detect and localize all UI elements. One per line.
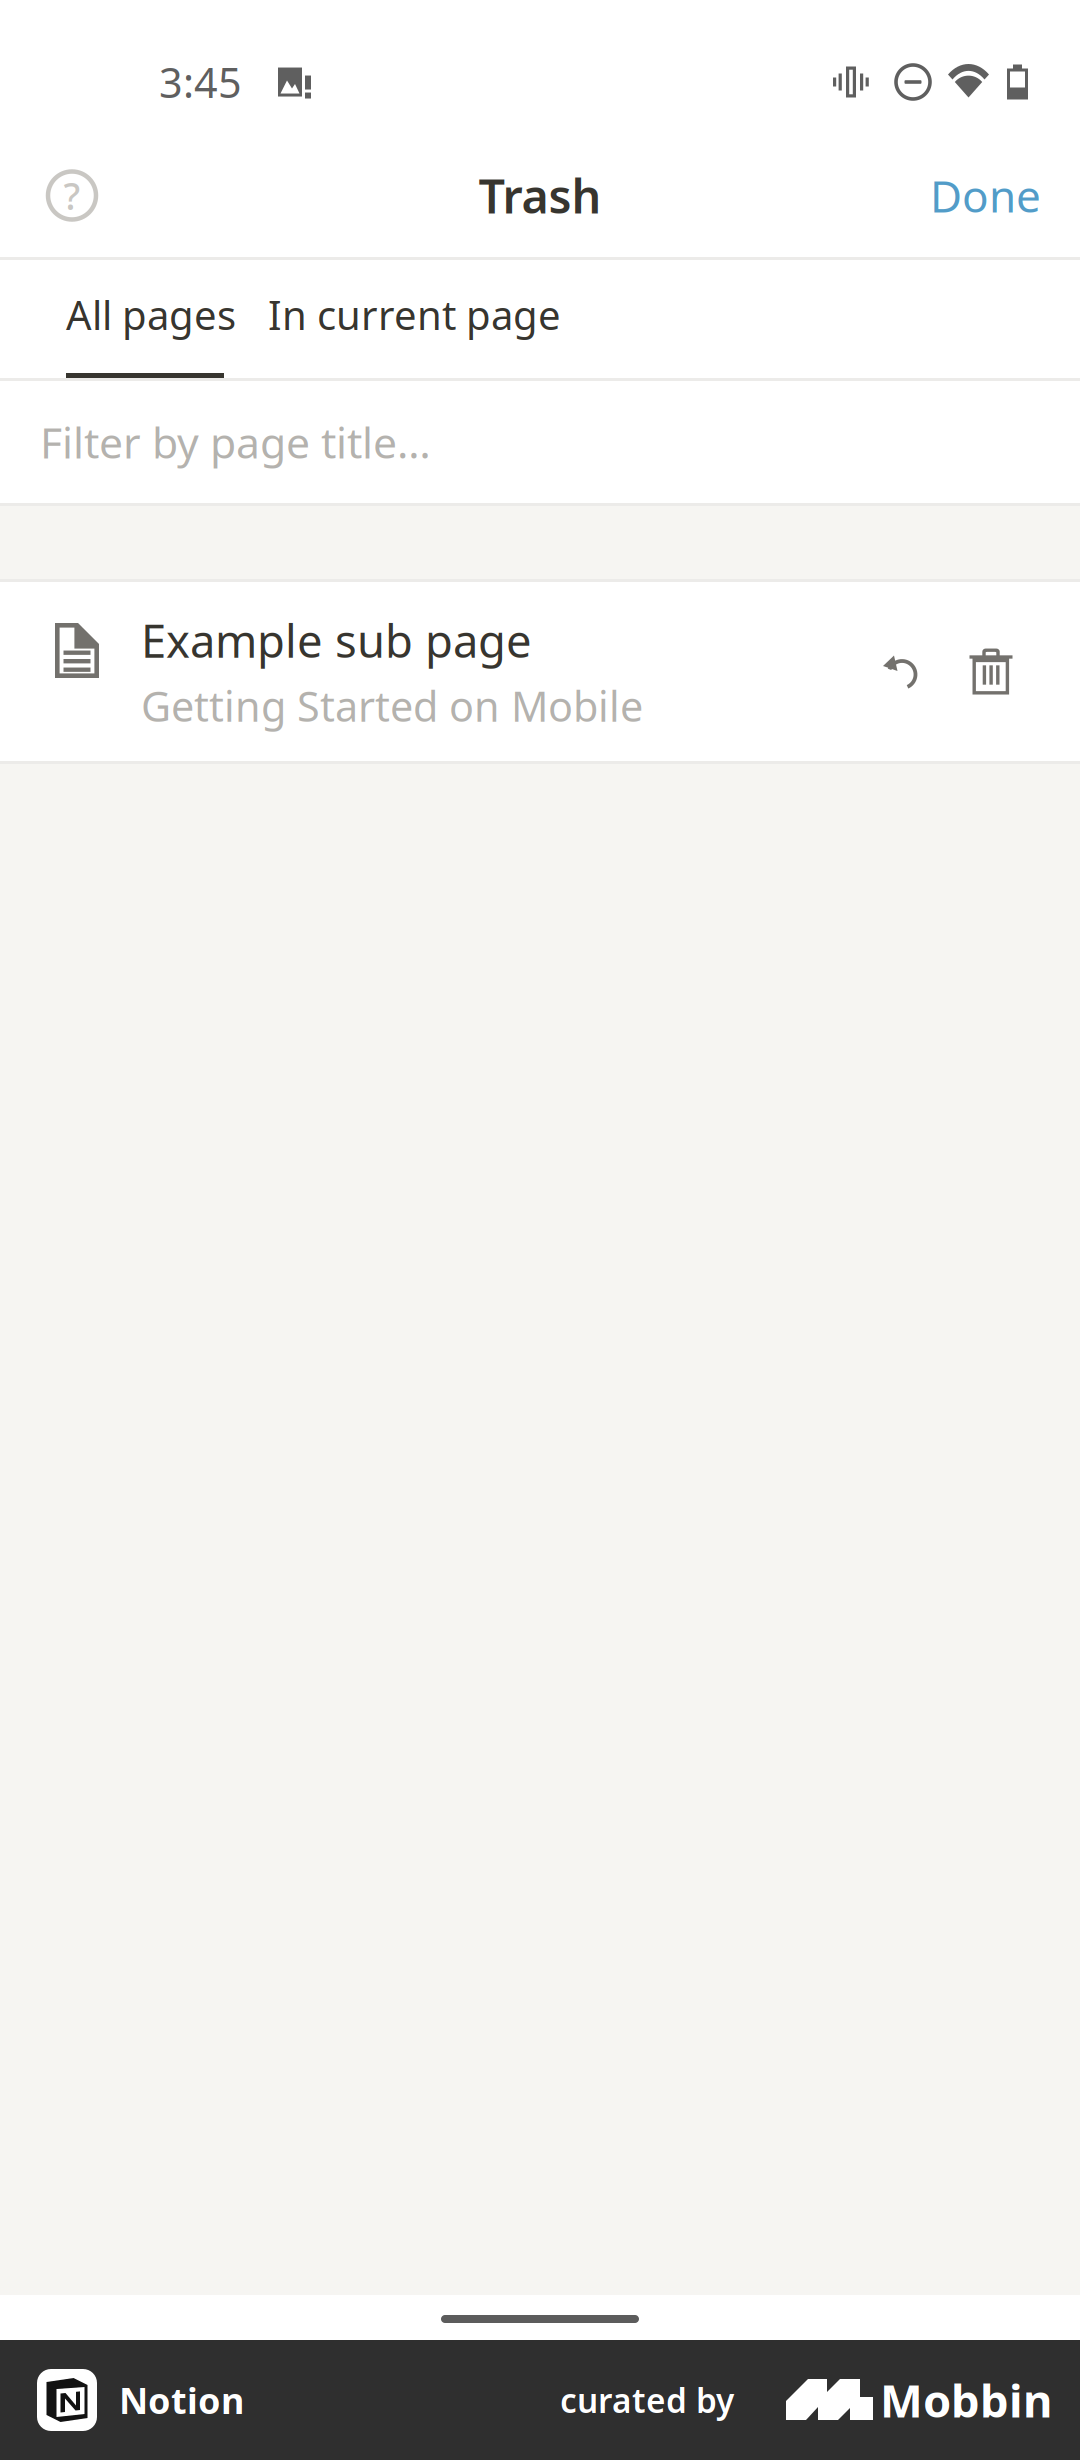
- button[interactable]: Example sub page: [0, 582, 1080, 761]
- staticText: All pages: [66, 288, 236, 341]
- staticText: ?: [63, 171, 80, 220]
- staticText: Getting Started on Mobile: [141, 678, 643, 733]
- staticText: Mobbin: [880, 2370, 1052, 2430]
- staticText: Example sub page: [141, 610, 532, 670]
- staticText: 3:45: [159, 55, 242, 109]
- staticText: curated by: [560, 2378, 734, 2422]
- button[interactable]: Delete permanently: [947, 627, 1035, 715]
- staticText: Trash: [478, 164, 601, 226]
- button[interactable]: Filter by page title…: [0, 381, 1080, 503]
- button[interactable]: Restore: [857, 627, 945, 715]
- button[interactable]: All pages: [66, 260, 224, 378]
- button[interactable]: Help: [24, 147, 120, 243]
- button[interactable]: In current page: [268, 260, 561, 378]
- staticText: Done: [930, 166, 1041, 225]
- staticText: Filter by page title…: [40, 414, 431, 470]
- staticText: In current page: [268, 288, 561, 341]
- button[interactable]: Done: [908, 144, 1063, 247]
- staticText: Notion: [119, 2376, 244, 2424]
